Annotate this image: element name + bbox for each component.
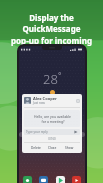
staticText: 0/160 xyxy=(24,137,80,141)
staticText: 28 xyxy=(43,70,58,88)
staticText: ° xyxy=(58,70,62,81)
button[interactable]: Delete xyxy=(30,145,42,151)
button[interactable]: Close xyxy=(76,99,80,103)
staticText: Type your reply xyxy=(26,130,48,134)
button[interactable]: Play Store xyxy=(56,176,65,183)
staticText: Close xyxy=(48,146,57,150)
button[interactable]: Messages xyxy=(39,176,48,183)
staticText: Display the QuickMessage xyxy=(7,12,96,34)
staticText: for a meeting? xyxy=(41,119,65,124)
staticText: Hello, are you available xyxy=(34,114,71,119)
staticText: pop-up for incoming SMS xyxy=(7,35,96,57)
staticText: Show xyxy=(65,146,74,150)
button[interactable]: Alex Cooper xyxy=(22,94,82,153)
staticText: Delete xyxy=(31,146,41,150)
staticText: Alex Cooper xyxy=(33,96,57,101)
button[interactable]: Type your reply xyxy=(24,129,80,135)
button[interactable]: Close xyxy=(47,145,58,151)
button[interactable]: Send xyxy=(74,130,78,134)
button[interactable]: YouTube xyxy=(72,176,81,183)
button[interactable]: Phone xyxy=(23,176,32,183)
staticText: Just now xyxy=(33,101,45,105)
button[interactable]: Show xyxy=(64,145,75,151)
